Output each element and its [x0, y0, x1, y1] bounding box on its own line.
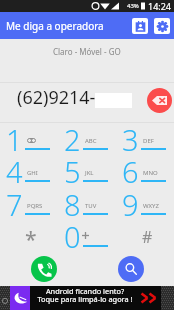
button[interactable]: Call	[31, 256, 57, 282]
staticText: DEF	[143, 137, 154, 145]
staticText: TUV	[85, 202, 97, 210]
staticText: JKL	[85, 169, 94, 177]
staticText: 3	[122, 120, 139, 152]
staticText: ABC	[85, 137, 97, 145]
button[interactable]: Settings	[154, 18, 170, 34]
button[interactable]: 7	[0, 190, 58, 222]
staticText: 43%	[127, 2, 139, 10]
staticText: 4	[6, 152, 23, 184]
staticText: Android ficando lento? Toque para limpá-…	[37, 286, 133, 304]
button[interactable]: Contacts	[132, 18, 148, 34]
staticText: PQRS	[27, 202, 43, 210]
button[interactable]: 3	[116, 125, 174, 157]
button[interactable]: #	[116, 222, 174, 254]
staticText: 7	[6, 185, 23, 217]
button[interactable]: 2	[58, 125, 116, 157]
staticText: Me diga a operadora	[6, 19, 104, 33]
button[interactable]: Search	[118, 256, 144, 282]
staticText: 14:24	[148, 0, 172, 12]
button[interactable]: 6	[116, 157, 174, 189]
staticText: 9	[122, 185, 139, 217]
button[interactable]: *	[0, 222, 58, 254]
button[interactable]: Android ficando lento? Toque para limpá-…	[0, 286, 174, 310]
staticText: *	[25, 225, 37, 254]
button[interactable]: Backspace	[147, 88, 172, 113]
staticText: 6	[122, 152, 139, 184]
staticText: WXYZ	[143, 202, 159, 210]
staticText: #	[142, 226, 153, 248]
button[interactable]: 5	[58, 157, 116, 189]
staticText: MNO	[143, 169, 158, 177]
button[interactable]: 4	[0, 157, 58, 189]
button[interactable]: 0	[58, 222, 116, 254]
staticText: 1	[6, 120, 23, 152]
button[interactable]: 8	[58, 190, 116, 222]
staticText: GHI	[27, 169, 38, 177]
staticText: (62)9214-	[17, 85, 96, 110]
staticText: 8	[64, 185, 81, 217]
button[interactable]: 1	[0, 125, 58, 157]
staticText: 5	[64, 152, 81, 184]
button[interactable]: 9	[116, 190, 174, 222]
staticText: 0	[64, 217, 81, 249]
staticText: 2	[64, 120, 81, 152]
staticText: Claro - Móvel - GO	[53, 46, 121, 57]
